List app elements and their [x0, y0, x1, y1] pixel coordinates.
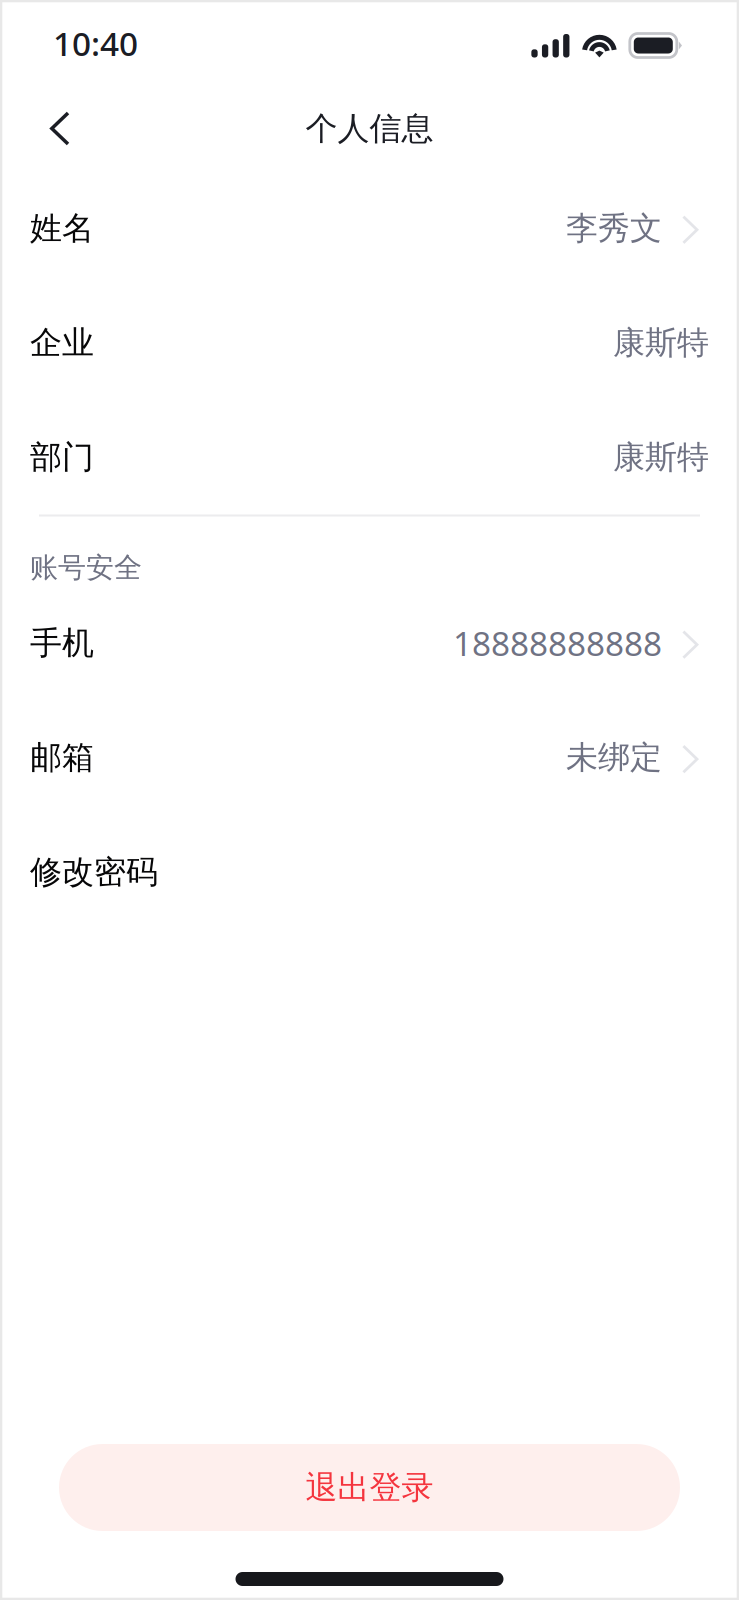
staticText: 修改密码 — [30, 852, 158, 892]
button[interactable]: 部门 — [0, 400, 739, 514]
button[interactable]: Back — [0, 95, 96, 162]
staticText: 手机 — [30, 623, 94, 663]
staticText: 企业 — [30, 323, 94, 362]
button[interactable]: 退出登录 — [59, 1444, 680, 1531]
staticText: 10:40 — [53, 21, 138, 65]
staticText: 个人信息 — [305, 109, 433, 148]
button[interactable]: 修改密码 — [0, 815, 739, 929]
button[interactable]: 邮箱 — [0, 700, 739, 815]
staticText: 18888888888 — [453, 621, 662, 665]
staticText: 部门 — [30, 438, 94, 477]
staticText: 邮箱 — [30, 738, 94, 777]
staticText: 账号安全 — [30, 550, 142, 585]
staticText: 康斯特 — [613, 323, 709, 362]
staticText: 未绑定 — [566, 738, 662, 777]
staticText: 康斯特 — [613, 438, 709, 477]
button[interactable]: 手机 — [0, 586, 739, 700]
staticText: 李秀文 — [566, 209, 662, 248]
staticText: 退出登录 — [305, 1468, 433, 1507]
button[interactable]: 姓名 — [0, 171, 739, 285]
staticText: 姓名 — [30, 209, 94, 248]
button[interactable]: 企业 — [0, 285, 739, 400]
